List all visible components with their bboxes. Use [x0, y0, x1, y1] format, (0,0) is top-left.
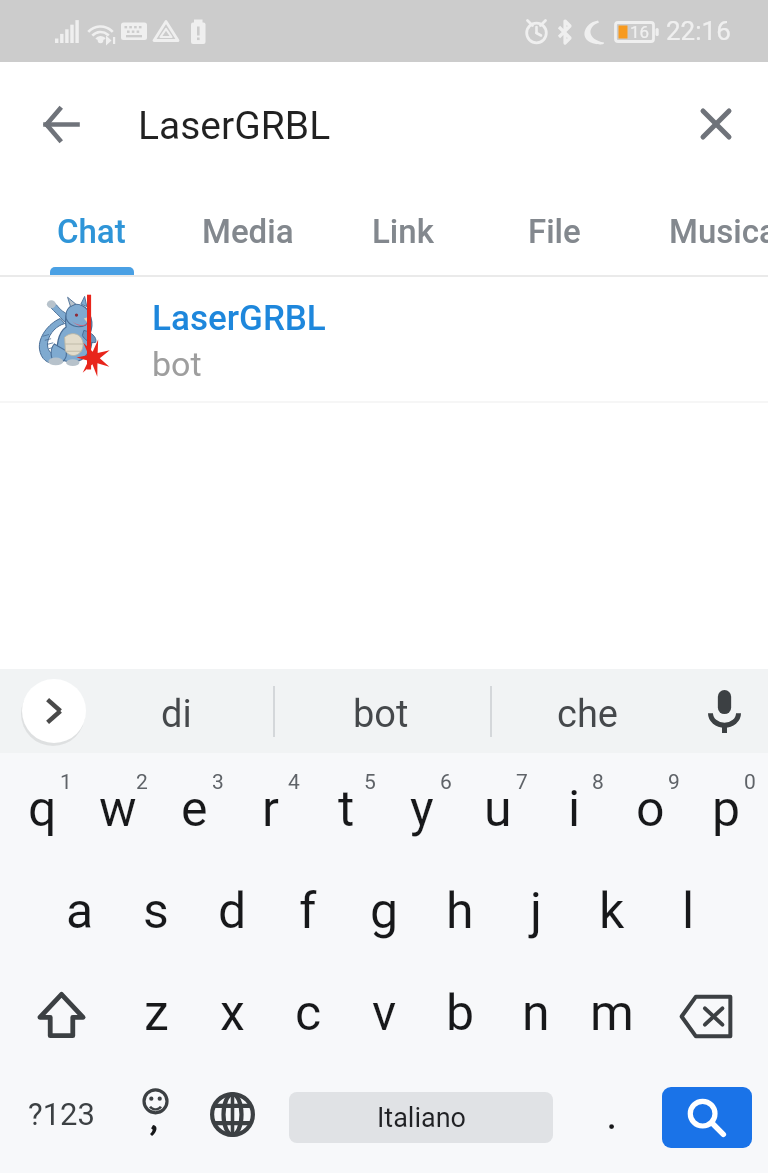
staticText: x — [220, 984, 245, 1043]
button[interactable]: c — [270, 965, 346, 1061]
button[interactable]: t — [308, 761, 384, 857]
staticText: Media — [202, 212, 294, 251]
staticText: File — [528, 212, 581, 251]
button[interactable]: Shift — [4, 967, 118, 1063]
staticText: f — [299, 882, 317, 941]
staticText: LaserGRBL — [138, 103, 331, 149]
button[interactable]: More suggestions — [22, 679, 86, 743]
button[interactable]: p — [688, 761, 764, 857]
staticText: o — [636, 780, 665, 839]
button[interactable]: q — [4, 761, 80, 857]
staticText: 2 — [136, 770, 148, 795]
button[interactable]: Musicali — [660, 186, 768, 276]
button[interactable]: m — [574, 965, 650, 1061]
button[interactable]: Italiano — [289, 1092, 553, 1143]
button[interactable]: l — [650, 863, 726, 959]
button[interactable]: k — [574, 863, 650, 959]
staticText: che — [557, 692, 618, 737]
button[interactable]: Voice input — [694, 681, 754, 741]
staticText: a — [66, 882, 94, 941]
staticText: n — [522, 984, 550, 1043]
staticText: p — [712, 780, 741, 839]
staticText: q — [28, 780, 57, 839]
staticText: LaserGRBL — [152, 298, 326, 339]
button[interactable]: b — [422, 965, 498, 1061]
staticText: k — [599, 882, 625, 941]
staticText: 22:16 — [666, 16, 731, 46]
staticText: e — [181, 780, 208, 839]
staticText: 7 — [516, 770, 528, 795]
button[interactable]: Emoji — [118, 1066, 194, 1162]
button[interactable]: Back — [24, 87, 98, 161]
staticText: 16 — [630, 22, 650, 42]
button[interactable]: h — [422, 863, 498, 959]
button[interactable]: bot — [281, 672, 481, 756]
staticText: 6 — [440, 770, 452, 795]
staticText: i — [568, 780, 581, 839]
staticText: b — [446, 984, 475, 1043]
staticText: y — [410, 780, 434, 839]
button[interactable]: Link — [326, 186, 480, 276]
button[interactable]: a — [42, 863, 118, 959]
staticText: r — [262, 780, 279, 839]
staticText: 8 — [592, 770, 604, 795]
button[interactable]: i — [536, 761, 612, 857]
button[interactable]: LaserGRBL — [0, 277, 768, 403]
button[interactable]: Clear search — [680, 88, 752, 160]
button[interactable]: . — [574, 1066, 650, 1162]
staticText: 1 — [60, 770, 72, 795]
staticText: j — [530, 882, 542, 941]
staticText: Italiano — [377, 1102, 466, 1134]
button[interactable]: g — [346, 863, 422, 959]
staticText: t — [338, 780, 355, 839]
button[interactable]: di — [76, 672, 276, 756]
button[interactable]: z — [118, 965, 194, 1061]
button[interactable]: j — [498, 863, 574, 959]
button[interactable]: Chat — [14, 186, 168, 276]
staticText: 4 — [288, 770, 300, 795]
button[interactable]: u — [460, 761, 536, 857]
staticText: z — [144, 984, 169, 1043]
staticText: d — [218, 882, 247, 941]
button[interactable]: Switch language — [194, 1066, 270, 1162]
button[interactable]: x — [194, 965, 270, 1061]
staticText: di — [161, 692, 192, 737]
staticText: w — [99, 780, 137, 839]
button[interactable]: e — [156, 761, 232, 857]
button[interactable]: s — [118, 863, 194, 959]
staticText: u — [484, 780, 512, 839]
button[interactable]: y — [384, 761, 460, 857]
button[interactable]: Backspace — [649, 968, 763, 1064]
staticText: 0 — [744, 770, 756, 795]
staticText: g — [370, 882, 399, 941]
staticText: s — [143, 882, 169, 941]
staticText: 9 — [668, 770, 680, 795]
staticText: v — [372, 984, 397, 1043]
staticText: ?123 — [28, 1096, 95, 1132]
button[interactable]: f — [270, 863, 346, 959]
button[interactable]: v — [346, 965, 422, 1061]
staticText: m — [590, 984, 634, 1043]
staticText: . — [606, 1088, 618, 1140]
staticText: Link — [372, 212, 434, 251]
staticText: bot — [152, 344, 202, 384]
button[interactable]: n — [498, 965, 574, 1061]
staticText: Chat — [57, 212, 126, 251]
staticText: Musicali — [669, 212, 768, 251]
button[interactable]: File — [477, 186, 631, 276]
button[interactable]: d — [194, 863, 270, 959]
button[interactable]: r — [232, 761, 308, 857]
button[interactable]: ?123 — [4, 1066, 118, 1162]
button[interactable]: Search — [662, 1087, 752, 1148]
staticText: bot — [353, 692, 409, 737]
staticText: l — [682, 882, 695, 941]
staticText: 3 — [212, 770, 224, 795]
staticText: 5 — [364, 770, 376, 795]
button[interactable]: Media — [171, 186, 325, 276]
button[interactable]: w — [80, 761, 156, 857]
staticText: h — [446, 882, 474, 941]
button[interactable]: o — [612, 761, 688, 857]
button[interactable]: che — [487, 672, 687, 756]
staticText: c — [295, 984, 322, 1043]
